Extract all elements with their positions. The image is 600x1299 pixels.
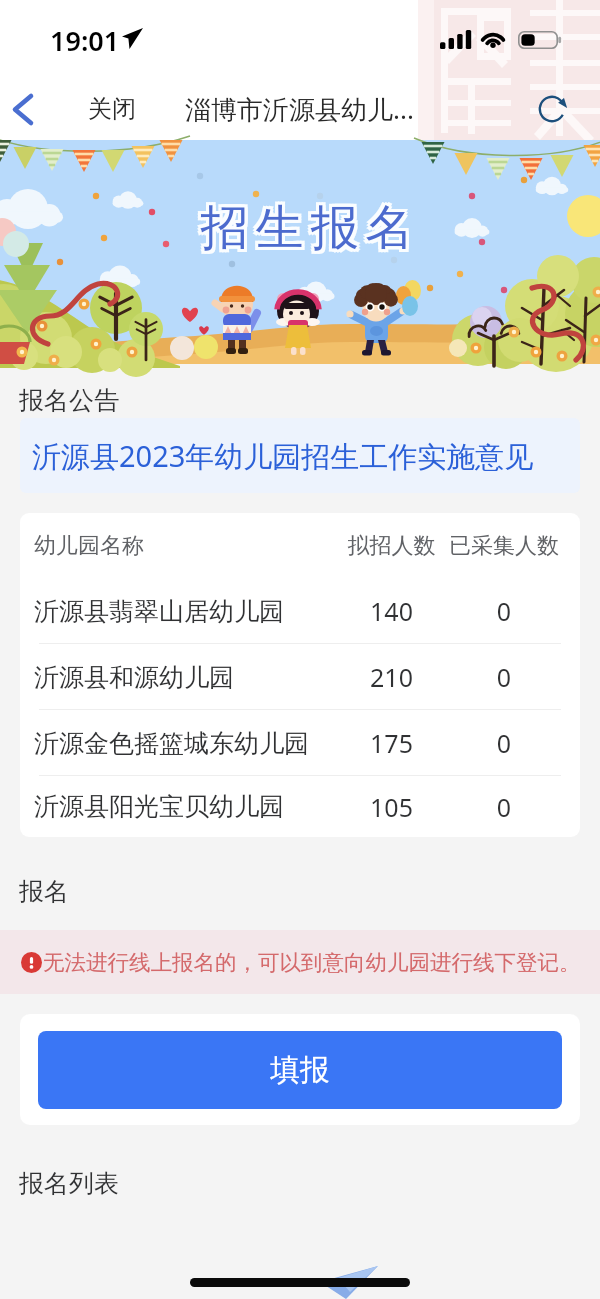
staticText: 招生报名 bbox=[200, 195, 420, 255]
staticText: 175 bbox=[341, 726, 442, 760]
staticText: 140 bbox=[341, 594, 442, 628]
staticText: 0 bbox=[442, 594, 566, 628]
staticText: 招生报名 bbox=[197, 198, 417, 258]
staticText: 招生报名 bbox=[200, 198, 420, 258]
staticText: 0 bbox=[442, 660, 566, 694]
staticText: 填报 bbox=[270, 1051, 330, 1089]
button[interactable]: 刷新 bbox=[530, 78, 576, 140]
staticText: 沂源县和源幼儿园 bbox=[34, 662, 341, 693]
staticText: 无法进行线上报名的，可以到意向幼儿园进行线下登记。 bbox=[43, 949, 581, 976]
staticText: 招生报名 bbox=[197, 201, 417, 261]
staticText: 关闭 bbox=[88, 94, 136, 124]
staticText: 招生报名 bbox=[194, 198, 414, 258]
staticText: 报名公告 bbox=[19, 385, 119, 416]
staticText: 105 bbox=[341, 790, 442, 824]
staticText: 报名 bbox=[19, 876, 69, 907]
button[interactable]: 关闭 bbox=[82, 78, 142, 140]
staticText: 210 bbox=[341, 660, 442, 694]
staticText: 招生报名 bbox=[194, 195, 414, 255]
staticText: 报名列表 bbox=[19, 1168, 119, 1199]
staticText: 沂源县阳光宝贝幼儿园 bbox=[34, 791, 341, 822]
staticText: 已采集人数 bbox=[442, 532, 566, 560]
staticText: 0 bbox=[442, 790, 566, 824]
staticText: 沂源县2023年幼儿园招生工作实施意见 bbox=[32, 436, 534, 476]
staticText: 拟招人数 bbox=[341, 532, 442, 560]
staticText: 招生报名 bbox=[194, 201, 414, 261]
staticText: 招生报名 bbox=[200, 201, 420, 261]
button[interactable]: 沂源县2023年幼儿园招生工作实施意见 bbox=[20, 418, 580, 493]
button[interactable]: 返回 bbox=[0, 78, 46, 140]
staticText: 0 bbox=[442, 726, 566, 760]
staticText: 沂源县翡翠山居幼儿园 bbox=[34, 596, 341, 627]
staticText: 招生报名 bbox=[197, 195, 417, 255]
staticText: 19:01 bbox=[50, 22, 120, 59]
staticText: 幼儿园名称 bbox=[34, 532, 341, 560]
button[interactable]: 填报 bbox=[38, 1031, 562, 1109]
staticText: 淄博市沂源县幼儿... bbox=[185, 91, 414, 127]
staticText: 沂源金色摇篮城东幼儿园 bbox=[34, 728, 341, 759]
